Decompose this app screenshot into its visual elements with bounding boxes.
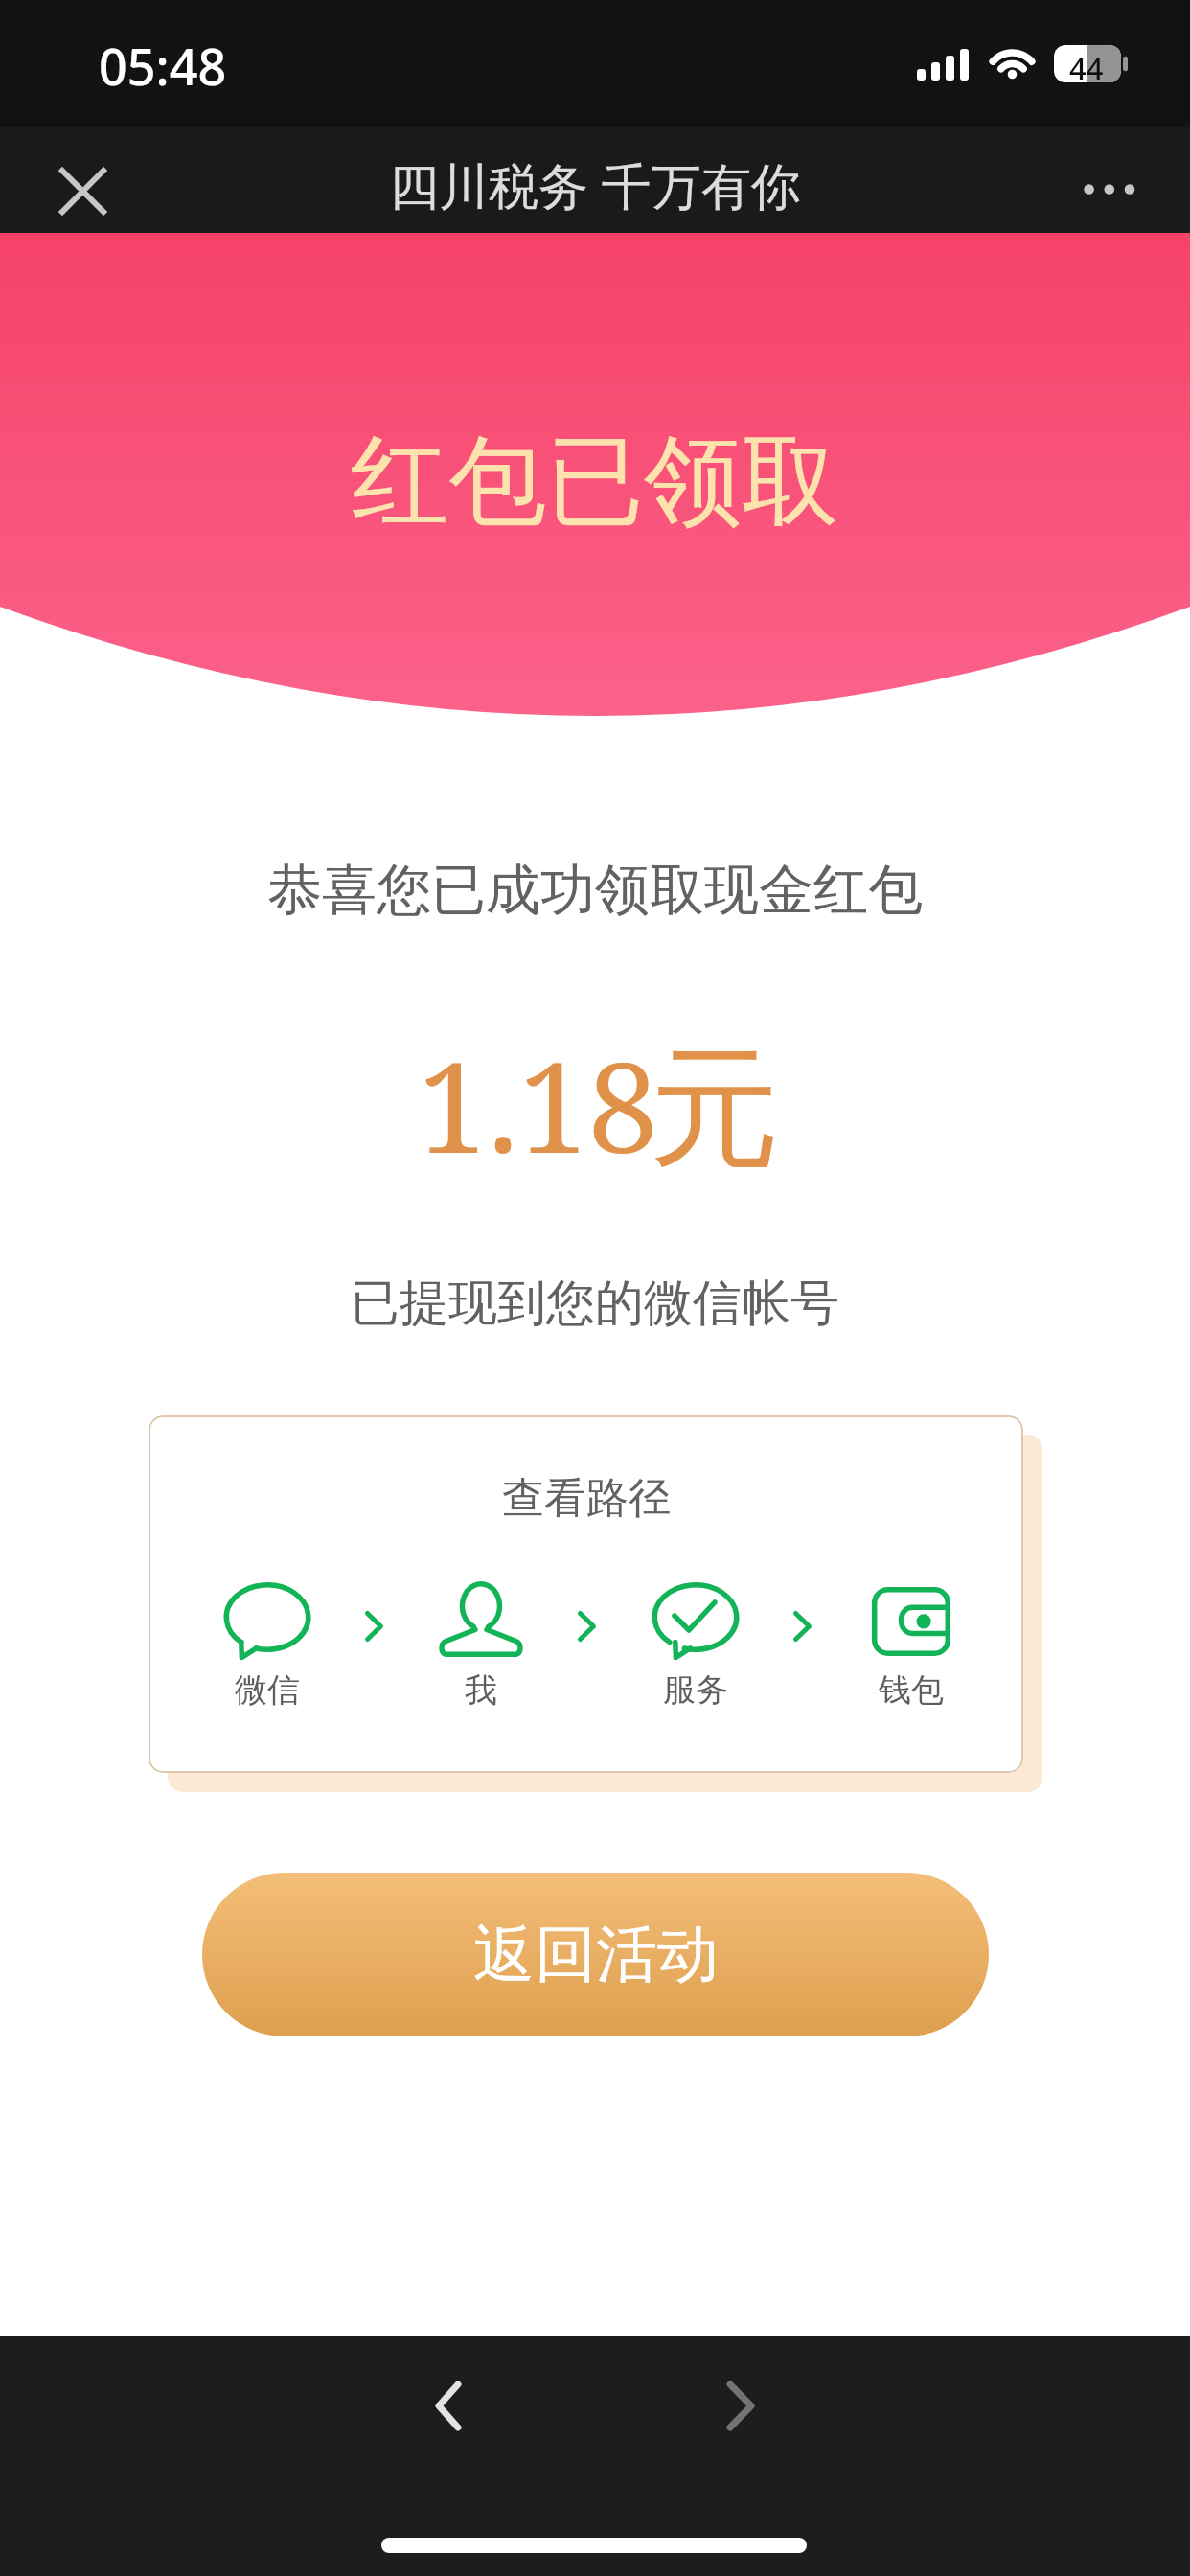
staticText: 查看路径 (502, 1472, 671, 1525)
staticText: 05:48 (99, 32, 227, 100)
button[interactable]: 查看路径 (149, 1415, 1023, 1773)
staticText: 已提现到您的微信帐号 (0, 1273, 1190, 1334)
staticText: 微信 (200, 1669, 334, 1711)
staticText: 红包已领取 (0, 421, 1190, 543)
staticText: 四川税务 千万有你 (0, 150, 1190, 218)
staticText: 我 (414, 1669, 548, 1711)
staticText: 服务 (629, 1669, 763, 1711)
button[interactable]: Close (44, 152, 121, 229)
button[interactable]: More options (1069, 151, 1146, 228)
staticText: 钱包 (844, 1669, 978, 1711)
staticText: 1.18 (418, 1020, 658, 1189)
staticText: 恭喜您已成功领取现金红包 (0, 856, 1190, 925)
staticText: 44 (1069, 48, 1104, 85)
button[interactable]: Forward (702, 2367, 779, 2444)
button[interactable]: Back (410, 2367, 487, 2444)
button[interactable]: 返回活动 (202, 1873, 989, 2036)
staticText: 元 (650, 1027, 780, 1191)
staticText: 返回活动 (473, 1916, 719, 1993)
